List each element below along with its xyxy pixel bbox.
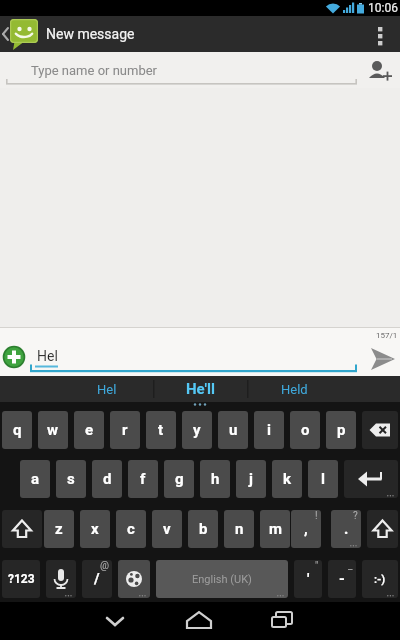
staticText: l: [321, 470, 325, 488]
staticText: a: [31, 470, 40, 488]
button[interactable]: o: [290, 411, 320, 449]
staticText: w: [47, 421, 59, 439]
button[interactable]: l: [308, 460, 338, 498]
button[interactable]: [0, 16, 400, 52]
staticText: h: [211, 470, 220, 488]
button[interactable]: r: [110, 411, 140, 449]
staticText: Type name or number: [31, 63, 158, 78]
button[interactable]: .: [331, 510, 361, 548]
button[interactable]: j: [236, 460, 266, 498]
staticText: y: [193, 421, 201, 439]
staticText: u: [229, 421, 238, 439]
button[interactable]: [2, 510, 42, 548]
staticText: z: [55, 520, 63, 538]
staticText: ?123: [8, 572, 35, 586]
button[interactable]: English (UK): [156, 560, 288, 598]
staticText: .: [344, 520, 349, 538]
button[interactable]: ,: [291, 510, 321, 548]
button[interactable]: q: [2, 411, 32, 449]
button[interactable]: a: [20, 460, 50, 498]
button[interactable]: h: [200, 460, 230, 498]
staticText: ,: [304, 520, 308, 538]
button[interactable]: d: [92, 460, 122, 498]
staticText: He'll: [186, 380, 215, 398]
button[interactable]: v: [152, 510, 182, 548]
button[interactable]: [367, 510, 398, 548]
button[interactable]: p: [326, 411, 356, 449]
button[interactable]: [374, 16, 400, 52]
staticText: ': [307, 570, 310, 588]
staticText: s: [67, 470, 75, 488]
button[interactable]: m: [260, 510, 290, 548]
button[interactable]: ': [294, 560, 322, 598]
button[interactable]: t: [146, 411, 176, 449]
staticText: r: [122, 421, 128, 439]
button[interactable]: b: [188, 510, 218, 548]
staticText: _: [348, 560, 353, 572]
staticText: j: [249, 470, 253, 488]
staticText: -: [339, 570, 345, 588]
button[interactable]: [183, 602, 215, 640]
staticText: k: [283, 470, 292, 488]
staticText: g: [175, 470, 184, 488]
staticText: 157/1: [376, 331, 398, 340]
button[interactable]: [0, 52, 400, 88]
button[interactable]: c: [116, 510, 146, 548]
staticText: 10:06: [368, 1, 398, 15]
staticText: ": [315, 560, 319, 572]
staticText: q: [13, 421, 22, 439]
staticText: e: [85, 421, 94, 439]
button[interactable]: [118, 560, 150, 598]
button[interactable]: [266, 602, 298, 640]
staticText: ?: [353, 510, 358, 522]
staticText: @: [100, 560, 109, 572]
button[interactable]: -: [328, 560, 356, 598]
button[interactable]: g: [164, 460, 194, 498]
button[interactable]: w: [38, 411, 68, 449]
staticText: t: [158, 421, 164, 439]
button[interactable]: z: [44, 510, 74, 548]
staticText: p: [337, 421, 346, 439]
staticText: !: [315, 510, 318, 522]
staticText: n: [235, 520, 244, 538]
button[interactable]: i: [254, 411, 284, 449]
staticText: f: [140, 470, 146, 488]
button[interactable]: /: [82, 560, 112, 598]
button[interactable]: e: [74, 411, 104, 449]
staticText: x: [91, 520, 99, 538]
staticText: d: [103, 470, 112, 488]
staticText: i: [267, 421, 271, 439]
button[interactable]: f: [128, 460, 158, 498]
button[interactable]: n: [224, 510, 254, 548]
button[interactable]: u: [218, 411, 248, 449]
button[interactable]: k: [272, 460, 302, 498]
staticText: b: [199, 520, 208, 538]
staticText: /: [94, 570, 100, 588]
button[interactable]: [362, 411, 398, 449]
staticText: Hel: [37, 348, 58, 364]
button[interactable]: [3, 346, 25, 368]
button[interactable]: x: [80, 510, 110, 548]
button[interactable]: s: [56, 460, 86, 498]
button[interactable]: :-): [362, 560, 398, 598]
staticText: English (UK): [192, 573, 252, 586]
staticText: :-): [374, 573, 386, 586]
staticText: m: [269, 520, 282, 538]
staticText: c: [127, 520, 135, 538]
button[interactable]: [344, 460, 398, 498]
staticText: v: [163, 520, 171, 538]
button[interactable]: ?123: [2, 560, 40, 598]
button[interactable]: y: [182, 411, 212, 449]
staticText: New message: [46, 26, 135, 42]
button[interactable]: [46, 560, 76, 598]
staticText: Held: [281, 382, 308, 397]
button[interactable]: [99, 602, 131, 640]
staticText: o: [301, 421, 310, 439]
staticText: Hel: [97, 382, 117, 397]
